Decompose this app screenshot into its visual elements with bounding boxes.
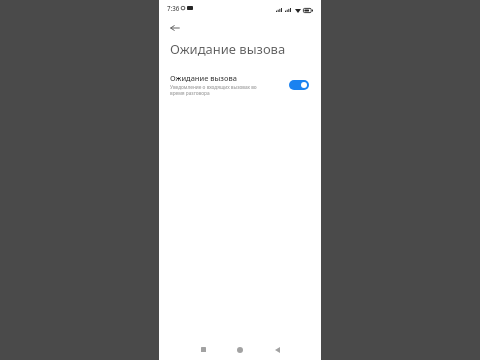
button[interactable]: Recents <box>194 339 212 360</box>
button[interactable]: Ожидание вызова <box>159 70 321 100</box>
staticText: Ожидание вызова <box>170 73 237 83</box>
button[interactable]: Home <box>231 339 249 360</box>
staticText: 7:36 <box>167 4 180 12</box>
staticText: время разговора <box>170 90 210 96</box>
button[interactable]: Back <box>164 17 186 39</box>
staticText: Ожидание вызова <box>170 40 286 58</box>
staticText: Уведомление о входящих вызовах во <box>170 84 257 90</box>
button[interactable]: Call waiting toggle <box>289 80 309 90</box>
button[interactable]: Back <box>268 339 286 360</box>
